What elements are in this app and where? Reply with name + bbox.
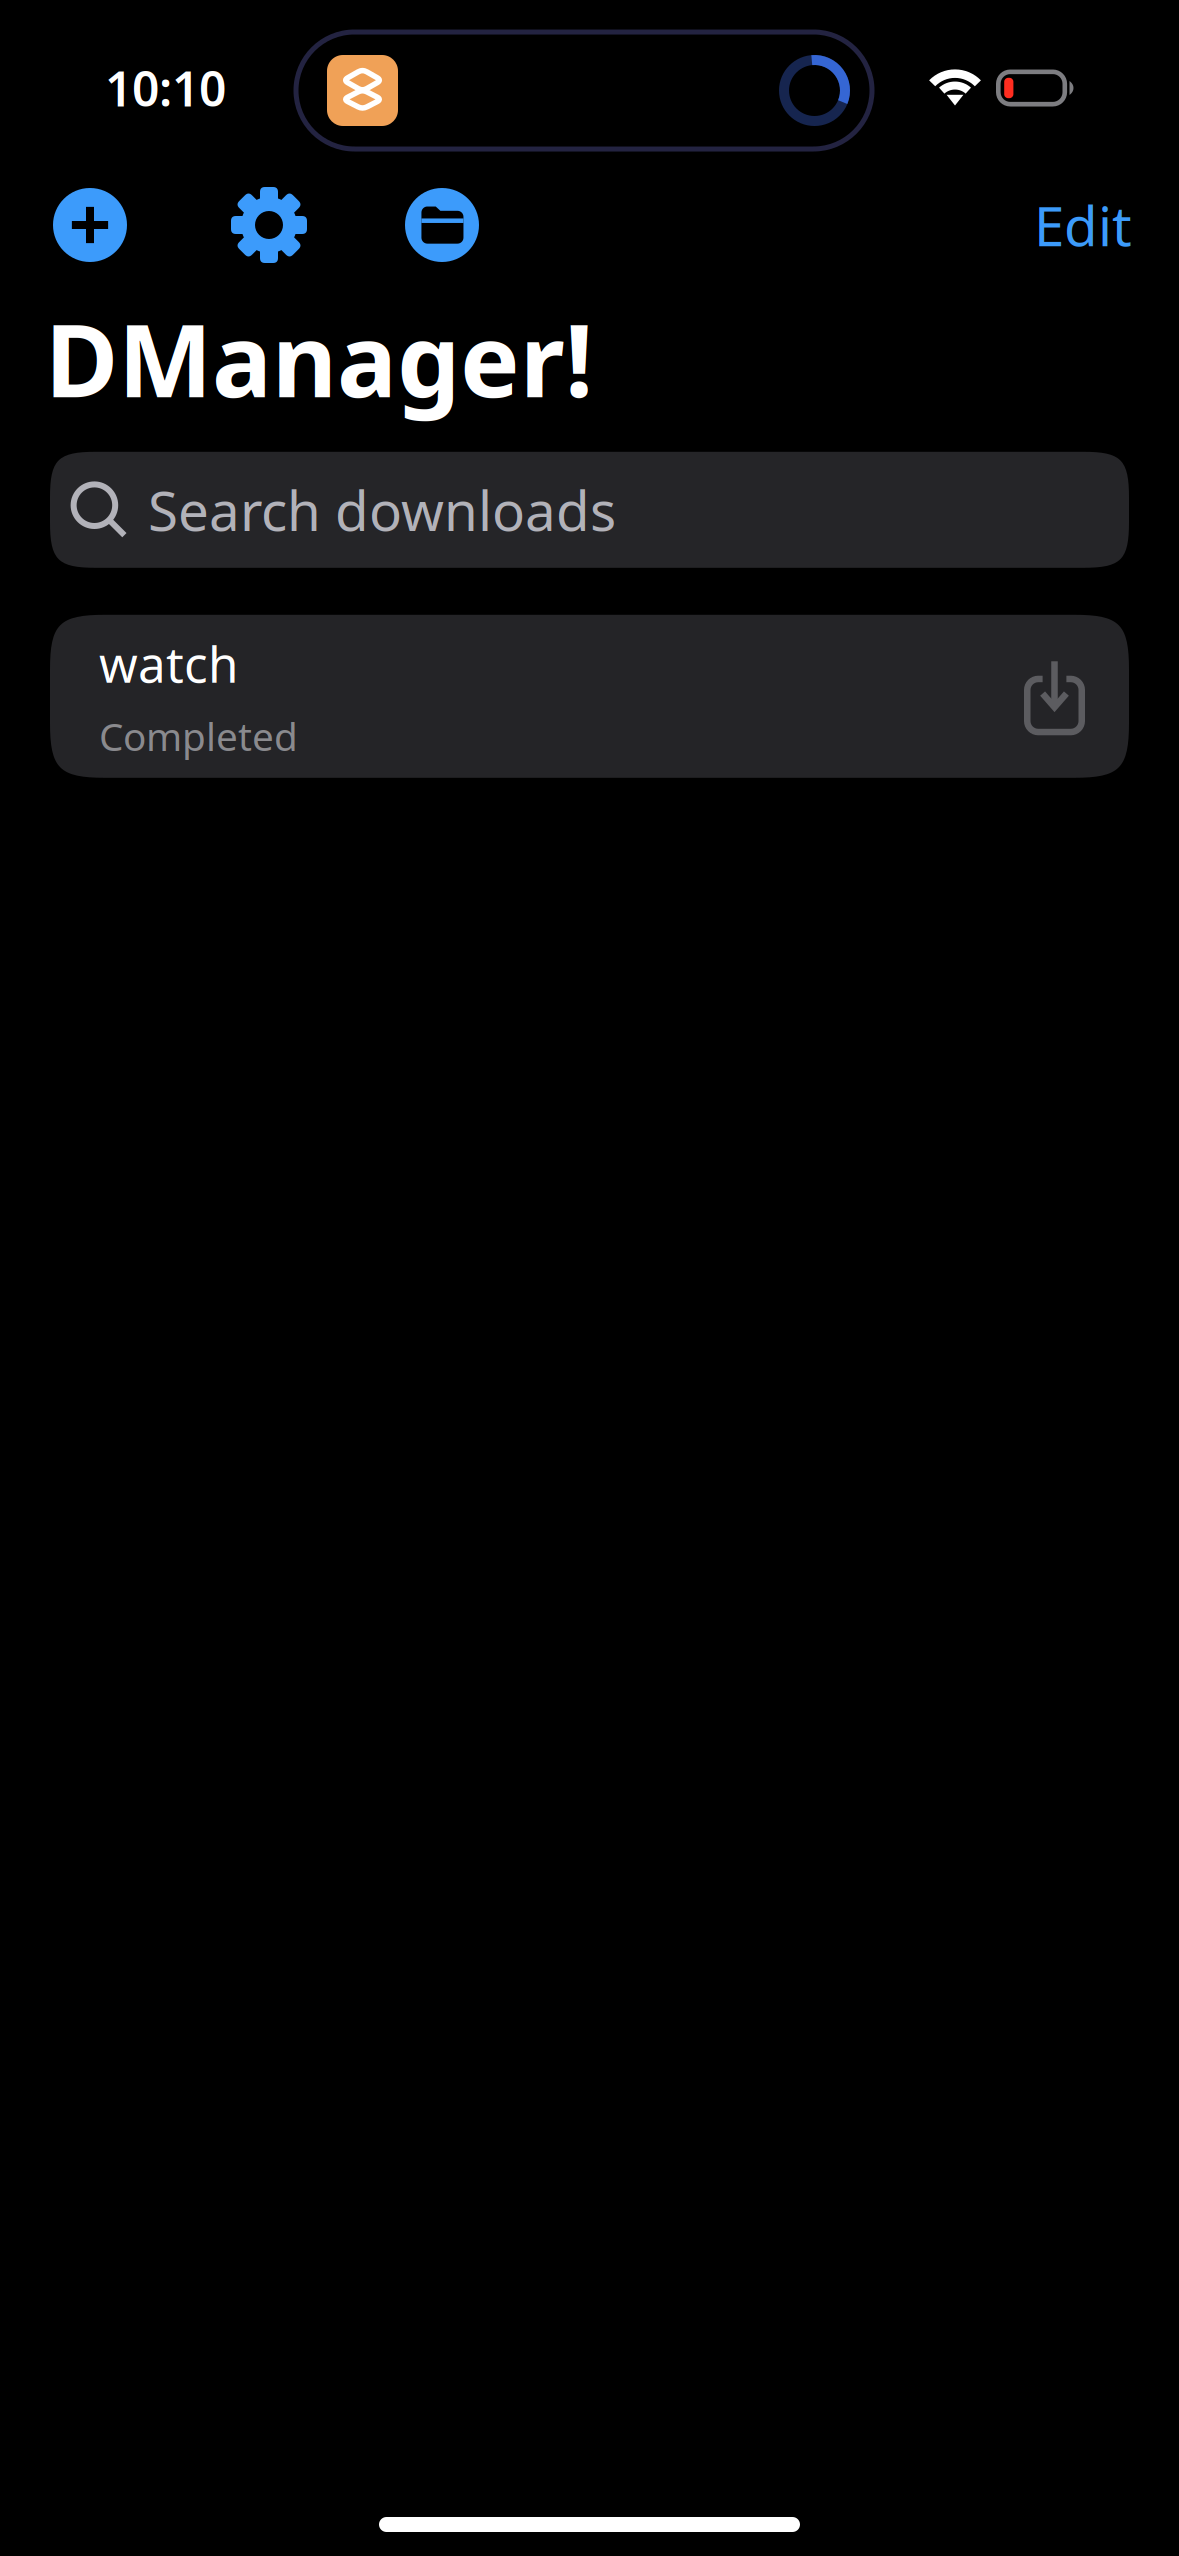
button[interactable]: Files [405, 188, 479, 262]
staticText: DManager! [45, 292, 593, 425]
staticText: Search downloads [148, 473, 616, 546]
staticText: 10:10 [105, 56, 226, 120]
button[interactable]: Search downloads [0, 452, 1179, 568]
staticText: Completed [99, 710, 298, 762]
button[interactable]: Add download [53, 188, 127, 262]
staticText: Edit [1034, 189, 1132, 261]
button[interactable]: Settings [229, 185, 309, 265]
staticText: watch [99, 631, 238, 696]
button[interactable]: Edit [1034, 189, 1132, 261]
button[interactable]: watch [0, 568, 1179, 778]
